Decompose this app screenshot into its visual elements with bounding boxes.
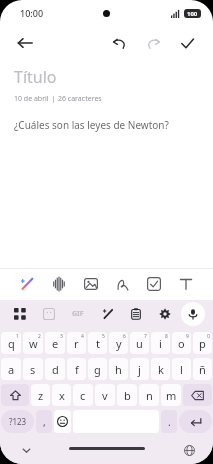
button[interactable]: Emoji [54,410,71,433]
staticText: c [80,388,86,403]
button[interactable]: Voice input [181,302,205,326]
button[interactable]: Checklist [141,271,167,297]
staticText: m [166,388,177,403]
button[interactable]: GIF [65,301,91,327]
staticText: ¿Cuáles son las leyes de Newton? [14,118,169,132]
button[interactable]: v [95,384,115,406]
button[interactable]: u [130,332,149,354]
button[interactable]: c [73,384,93,406]
button[interactable]: Clipboard [124,302,148,326]
staticText: e [52,336,59,351]
button[interactable]: x [52,384,71,406]
button[interactable]: i [151,332,170,354]
button[interactable]: o [172,332,191,354]
staticText: 3 [60,333,63,340]
button[interactable]: d [45,358,65,380]
button[interactable]: n [139,384,159,406]
button[interactable]: e [45,332,65,354]
staticText: l [180,362,183,377]
button[interactable]: Undo [105,29,133,57]
button[interactable]: Image [78,271,104,297]
button[interactable]: a [1,358,21,380]
button[interactable]: Apps [8,302,32,326]
button[interactable]: r [67,332,86,354]
button[interactable]: Back [10,28,40,58]
button[interactable]: ?123 [1,410,34,433]
staticText: i [159,336,162,351]
button[interactable]: Enter [179,410,212,433]
staticText: x [59,388,65,403]
staticText: z [38,388,44,403]
staticText: p [199,336,206,351]
staticText: d [52,362,59,377]
staticText: 26 caracteres [58,94,102,104]
button[interactable]: Change language [179,440,199,460]
button[interactable]: Magic [96,302,120,326]
button[interactable]: t [88,332,107,354]
button[interactable]: Draw [109,271,135,297]
staticText: ?123 [9,416,27,427]
button[interactable]: Voice [46,271,72,297]
staticText: 2 [38,333,41,340]
button[interactable]: l [172,358,191,380]
button[interactable]: b [117,384,137,406]
button[interactable]: k [151,358,170,380]
button[interactable]: s [23,358,43,380]
button[interactable]: Comma [36,410,52,433]
staticText: . [168,415,171,429]
staticText: 0 [207,333,210,340]
staticText: q [8,336,15,351]
button[interactable]: AI assist [14,271,40,297]
button[interactable]: Period [161,410,177,433]
staticText: 10:00 [20,7,44,19]
button[interactable]: f [67,358,86,380]
button[interactable]: g [88,358,107,380]
button[interactable]: Save [173,29,201,57]
button[interactable]: ñ [193,358,212,380]
staticText: j [138,362,141,377]
button[interactable]: w [23,332,43,354]
staticText: b [124,388,131,403]
staticText: 100 [187,10,198,18]
staticText: Título [14,66,57,88]
staticText: 8 [165,333,168,340]
button[interactable]: y [109,332,128,354]
staticText: , [43,415,46,429]
staticText: u [136,336,143,351]
button[interactable]: Stickers [37,302,61,326]
staticText: 7 [144,333,147,340]
button[interactable]: h [109,358,128,380]
button[interactable]: Text format [173,271,199,297]
staticText: h [115,362,122,377]
staticText: 9 [186,333,189,340]
button[interactable]: q [1,332,21,354]
button[interactable]: Settings [153,302,177,326]
button[interactable]: m [161,384,181,406]
staticText: g [94,362,101,377]
staticText: t [96,336,100,351]
button[interactable]: z [31,384,50,406]
staticText: o [178,336,185,351]
button[interactable]: p [193,332,212,354]
staticText: s [30,362,36,377]
staticText: w [29,336,38,351]
staticText: 1 [16,333,19,340]
button[interactable]: Redo [139,29,167,57]
staticText: n [146,388,153,403]
staticText: k [158,362,164,377]
staticText: v [102,388,108,403]
staticText: y [116,336,122,351]
staticText: a [8,362,15,377]
staticText: 10 de abril [14,94,49,104]
staticText: GIF [72,309,84,319]
button[interactable]: j [130,358,149,380]
staticText: f [75,362,79,377]
staticText: ñ [199,362,206,377]
button[interactable]: Shift [1,384,29,406]
staticText: 6 [123,333,126,340]
button[interactable]: Backspace [183,384,212,406]
staticText: r [74,336,79,351]
button[interactable]: Hide keyboard [16,440,36,460]
staticText: 4 [81,333,84,340]
